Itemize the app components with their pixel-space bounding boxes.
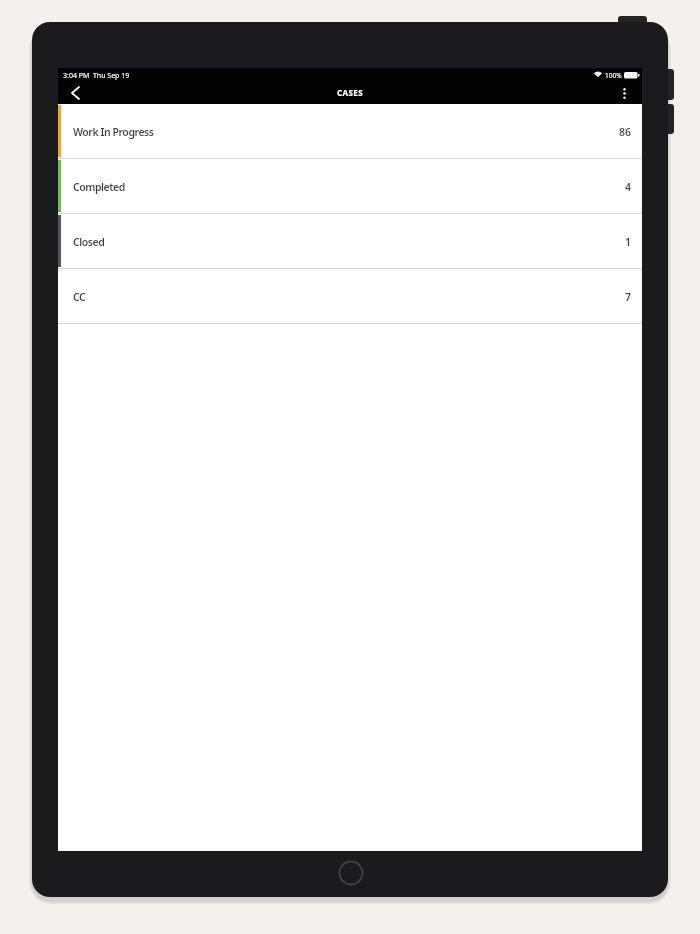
staticText: 3:04 PM Thu Sep 19 <box>63 71 130 81</box>
button[interactable]: Work In Progress <box>58 104 642 159</box>
staticText: Closed <box>73 235 105 249</box>
staticText: CASES <box>337 87 363 98</box>
staticText: Completed <box>73 180 125 194</box>
button[interactable]: Closed <box>58 214 642 269</box>
staticText: 86 <box>619 125 632 139</box>
button[interactable]: CC <box>58 269 642 324</box>
staticText: Work In Progress <box>73 125 154 139</box>
button[interactable] <box>613 82 635 104</box>
staticText: 1 <box>625 235 632 249</box>
staticText: 4 <box>625 180 632 194</box>
staticText: 7 <box>625 290 632 304</box>
button[interactable] <box>64 82 86 104</box>
staticText: CC <box>73 290 86 304</box>
staticText: 100% <box>605 71 622 80</box>
button[interactable]: Completed <box>58 159 642 214</box>
